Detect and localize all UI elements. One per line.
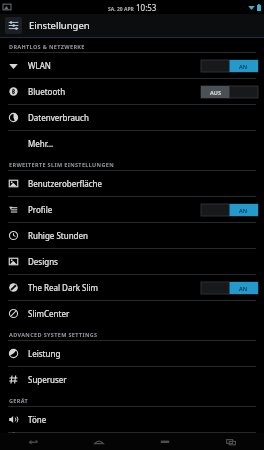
staticText: AN xyxy=(239,63,248,70)
staticText: Leistung xyxy=(28,348,61,359)
button[interactable]: Benutzeroberfläche xyxy=(0,171,264,197)
staticText: Bluetooth xyxy=(28,86,66,97)
button[interactable]: Menu xyxy=(132,433,198,450)
button[interactable]: Datenverbrauch xyxy=(0,105,264,131)
button[interactable]: Superuser xyxy=(0,367,264,392)
staticText: AN xyxy=(239,285,248,292)
staticText: WLAN xyxy=(28,60,51,71)
staticText: Benutzeroberfläche xyxy=(28,178,103,189)
button[interactable]: Recents xyxy=(198,433,264,450)
button[interactable]: Back xyxy=(0,433,66,450)
button[interactable]: SlimCenter xyxy=(0,301,264,326)
staticText: The Real Dark Slim xyxy=(28,282,99,293)
staticText: Designs xyxy=(28,256,58,267)
button[interactable]: Home xyxy=(66,433,132,450)
button[interactable]: Bluetooth xyxy=(0,79,264,105)
button[interactable]: WLAN xyxy=(0,53,264,79)
staticText: Superuser xyxy=(28,374,67,385)
button[interactable]: Töne xyxy=(0,407,264,433)
button[interactable]: AUS xyxy=(201,86,258,98)
button[interactable]: Mehr... xyxy=(0,131,264,156)
staticText: Profile xyxy=(28,204,53,215)
button[interactable]: Designs xyxy=(0,249,264,275)
staticText: SlimCenter xyxy=(28,308,70,319)
staticText: ERWEITERTE SLIM EINSTELLUNGEN xyxy=(9,161,115,168)
staticText: Einstellungen xyxy=(29,19,90,32)
staticText: 10:53 xyxy=(136,2,157,13)
button[interactable]: AN xyxy=(201,60,258,72)
button[interactable]: The Real Dark Slim xyxy=(0,275,264,301)
button[interactable]: Leistung xyxy=(0,341,264,367)
staticText: AN xyxy=(239,207,248,214)
staticText: Töne xyxy=(28,414,47,425)
staticText: Ruhige Stunden xyxy=(28,230,88,241)
staticText: ADVANCED SYSTEM SETTINGS xyxy=(9,331,98,338)
button[interactable]: Profile xyxy=(0,197,264,223)
staticText: AUS xyxy=(210,89,221,96)
button[interactable]: AN xyxy=(201,282,258,294)
staticText: DRAHTLOS & NETZWERKE xyxy=(9,43,85,50)
staticText: Datenverbrauch xyxy=(28,112,89,123)
staticText: GERÄT xyxy=(9,397,29,404)
button[interactable]: Ruhige Stunden xyxy=(0,223,264,249)
staticText: Mehr... xyxy=(28,138,54,149)
button[interactable]: AN xyxy=(201,204,258,216)
staticText: SA. 20 APR xyxy=(108,6,136,13)
button[interactable]: Einstellungen xyxy=(0,14,264,37)
